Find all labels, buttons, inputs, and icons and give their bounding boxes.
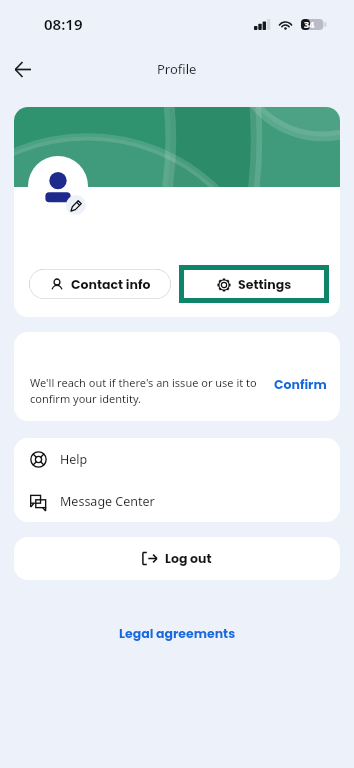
- staticText: Log out: [165, 550, 212, 567]
- button[interactable]: Legal agreements: [109, 620, 246, 647]
- staticText: Profile: [157, 60, 197, 78]
- staticText: Legal agreements: [119, 625, 236, 642]
- button[interactable]: Contact info: [29, 269, 171, 299]
- button[interactable]: Log out: [14, 537, 340, 580]
- staticText: Message Center: [60, 493, 155, 510]
- staticText: We'll reach out if there's an issue or u…: [30, 375, 264, 407]
- staticText: Settings: [238, 276, 292, 293]
- staticText: 08:19: [44, 14, 83, 34]
- button[interactable]: Help: [14, 438, 340, 480]
- button[interactable]: Confirm: [274, 375, 327, 393]
- staticText: Contact info: [71, 276, 151, 293]
- button[interactable]: Settings: [184, 270, 324, 298]
- button[interactable]: Message Center: [14, 480, 340, 522]
- button[interactable]: Back: [4, 51, 40, 87]
- button[interactable]: Edit profile photo: [28, 156, 88, 216]
- staticText: 34: [304, 18, 315, 30]
- staticText: Confirm: [274, 376, 327, 393]
- staticText: Help: [60, 451, 88, 468]
